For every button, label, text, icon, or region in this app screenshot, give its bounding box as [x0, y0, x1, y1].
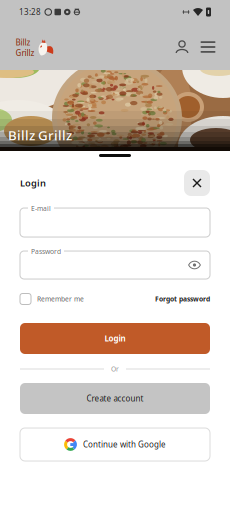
staticText: Grillz [15, 48, 34, 58]
button[interactable]: Close [184, 170, 210, 196]
button[interactable]: Create account [20, 383, 210, 414]
staticText: Create account [86, 393, 143, 404]
staticText: 13:28 [19, 7, 41, 17]
staticText: E-mail [31, 204, 51, 213]
button[interactable]: Login [20, 323, 210, 354]
staticText: Login [104, 333, 125, 344]
staticText: Billz [15, 37, 30, 48]
staticText: Login [20, 177, 46, 189]
button[interactable]: Remember me [20, 293, 84, 304]
staticText: Billz Grillz [8, 126, 72, 144]
button[interactable]: Forgot password [155, 295, 210, 303]
staticText: Remember me [37, 295, 84, 303]
button[interactable]: Continue with Google [20, 428, 210, 461]
button[interactable]: Menu [195, 34, 221, 60]
staticText: Continue with Google [83, 439, 166, 450]
staticText: Or [111, 365, 119, 373]
staticText: Password [31, 247, 61, 256]
button[interactable]: Account [169, 34, 195, 60]
staticText: Forgot password [155, 295, 210, 303]
